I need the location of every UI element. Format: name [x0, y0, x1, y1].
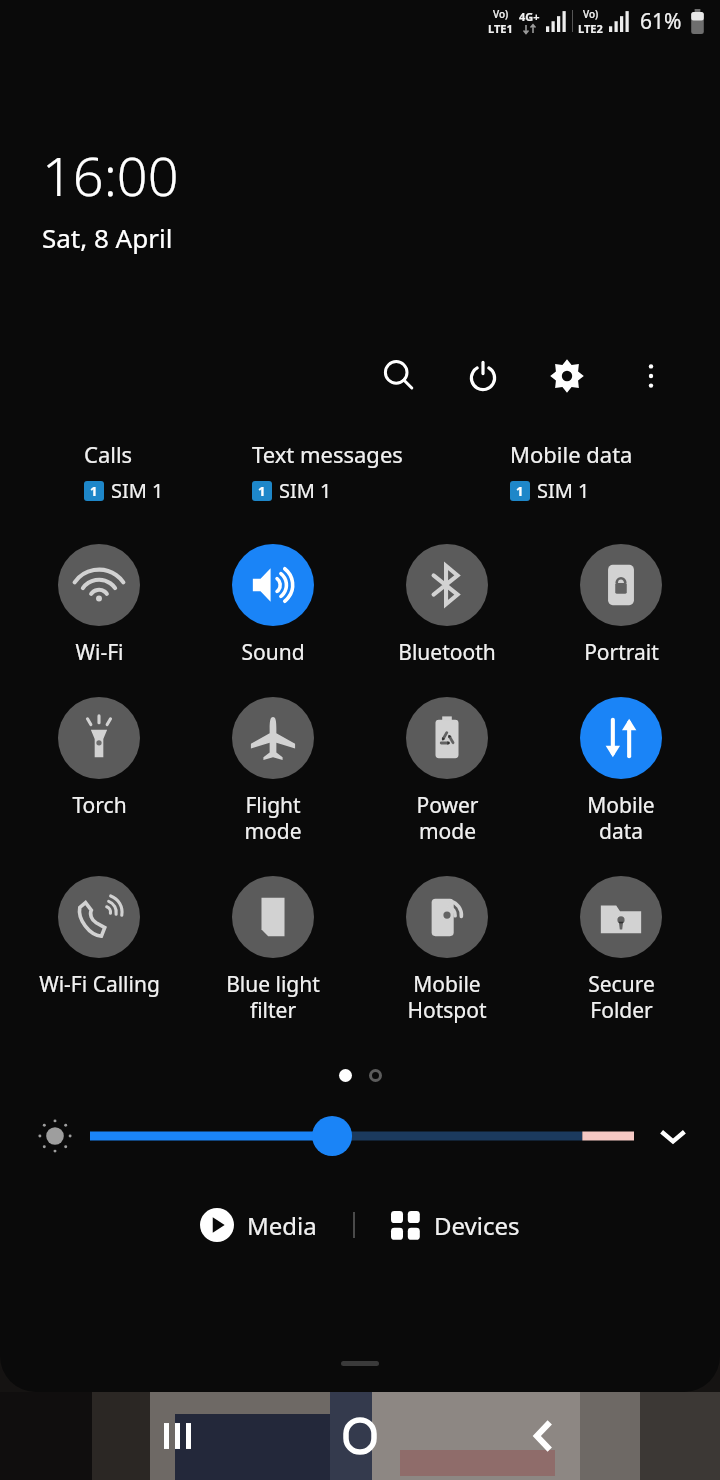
- button[interactable]: Calls: [84, 439, 252, 504]
- button[interactable]: Blue light filter: [198, 876, 348, 1025]
- staticText: Media: [247, 1209, 317, 1242]
- staticText: Torch: [72, 791, 127, 820]
- staticText: 1: [258, 482, 266, 500]
- button[interactable]: Settings: [538, 347, 596, 405]
- button[interactable]: Bluetooth: [372, 544, 522, 667]
- button[interactable]: Mobile Hotspot: [372, 876, 522, 1025]
- staticText: 1: [516, 482, 524, 500]
- staticText: Vo): [493, 7, 509, 21]
- staticText: Calls: [84, 439, 133, 469]
- button[interactable]: Secure Folder: [546, 876, 696, 1025]
- button[interactable]: Sound: [198, 544, 348, 667]
- button[interactable]: More options: [622, 347, 680, 405]
- button[interactable]: Wi-Fi Calling: [24, 876, 174, 999]
- staticText: 4G+: [519, 9, 540, 24]
- button[interactable]: Search: [370, 347, 428, 405]
- staticText: Power mode: [416, 791, 479, 846]
- staticText: 16:00: [42, 138, 179, 212]
- button[interactable]: Home: [322, 1398, 398, 1474]
- button[interactable]: Expand brightness settings: [648, 1111, 698, 1161]
- button[interactable]: Power mode: [372, 697, 522, 846]
- staticText: 1: [90, 482, 98, 500]
- staticText: LTE2: [578, 21, 603, 36]
- staticText: Bluetooth: [398, 638, 496, 667]
- staticText: Portrait: [584, 638, 659, 667]
- button[interactable]: Mobile data: [510, 439, 700, 504]
- staticText: Devices: [434, 1209, 520, 1242]
- staticText: Mobile data: [510, 439, 633, 469]
- staticText: Wi-Fi: [75, 638, 124, 667]
- button[interactable]: Mobile data: [546, 697, 696, 846]
- staticText: Wi-Fi Calling: [39, 970, 160, 999]
- button[interactable]: Media: [190, 1202, 327, 1248]
- button[interactable]: Recents: [140, 1400, 212, 1472]
- button[interactable]: Auto brightness: [30, 1111, 80, 1161]
- button[interactable]: Back: [508, 1400, 580, 1472]
- staticText: Vo): [583, 7, 599, 21]
- staticText: Mobile Hotspot: [407, 970, 487, 1025]
- staticText: Text messages: [252, 439, 403, 469]
- button[interactable]: Flight mode: [198, 697, 348, 846]
- button[interactable]: Torch: [24, 697, 174, 820]
- staticText: Blue light filter: [226, 970, 320, 1025]
- button[interactable]: Portrait: [546, 544, 696, 667]
- staticText: Mobile data: [587, 791, 655, 846]
- button[interactable]: Devices: [381, 1203, 530, 1248]
- button[interactable]: Power: [454, 347, 512, 405]
- staticText: SIM 1: [279, 477, 332, 504]
- staticText: 61%: [640, 7, 682, 36]
- button[interactable]: Text messages: [252, 439, 510, 504]
- staticText: Flight mode: [244, 791, 302, 846]
- staticText: Secure Folder: [588, 970, 655, 1025]
- staticText: SIM 1: [111, 477, 164, 504]
- staticText: Sat, 8 April: [42, 220, 173, 255]
- button[interactable]: Wi-Fi: [24, 544, 174, 667]
- staticText: SIM 1: [537, 477, 590, 504]
- staticText: LTE1: [488, 21, 513, 36]
- staticText: Sound: [241, 638, 305, 667]
- button[interactable]: [90, 1111, 634, 1161]
